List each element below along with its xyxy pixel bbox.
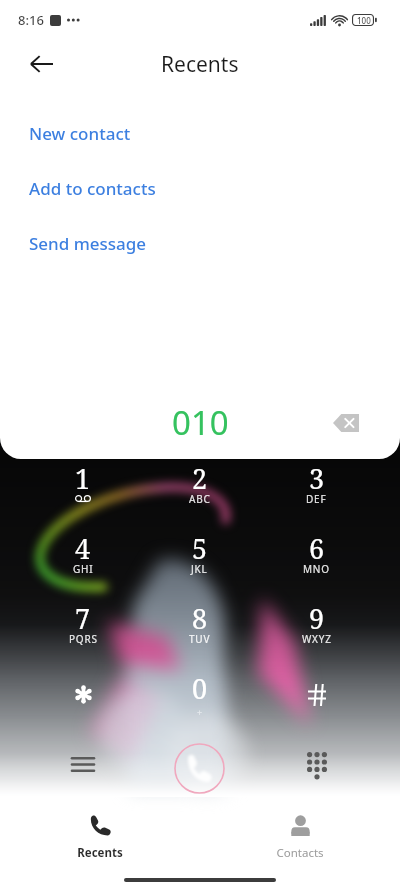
staticText: TUV	[189, 632, 211, 646]
staticText: 100	[357, 15, 371, 26]
staticText: Add to contacts	[29, 177, 156, 200]
staticText: Contacts	[276, 845, 324, 861]
button[interactable]: 2	[141, 451, 258, 521]
staticText: JKL	[191, 562, 208, 576]
staticText: 3	[309, 460, 325, 497]
button[interactable]: Backspace	[326, 403, 366, 443]
button[interactable]: Recents	[0, 811, 200, 867]
staticText: New contact	[29, 122, 131, 145]
button[interactable]: Dialpad	[258, 731, 375, 797]
button[interactable]: 5	[141, 521, 258, 591]
button[interactable]	[258, 661, 375, 731]
button[interactable]: 0	[141, 661, 258, 731]
button[interactable]: 6	[258, 521, 375, 591]
button[interactable]: 9	[258, 591, 375, 661]
button[interactable]: Contacts	[200, 811, 400, 867]
staticText: MNO	[303, 562, 330, 576]
staticText: Recents	[161, 50, 239, 79]
staticText: 1	[75, 460, 91, 497]
staticText: 8:16	[18, 11, 44, 29]
staticText: GHI	[73, 562, 94, 576]
staticText: 6	[309, 530, 325, 567]
staticText: 8	[192, 600, 208, 637]
button[interactable]: 8	[141, 591, 258, 661]
staticText: 5	[192, 530, 208, 567]
staticText: 0	[192, 670, 208, 707]
staticText: 7	[75, 600, 91, 637]
button[interactable]: Back	[18, 41, 64, 87]
button[interactable]: Send message	[0, 216, 400, 271]
staticText: Recents	[77, 845, 123, 861]
button[interactable]: 3	[258, 451, 375, 521]
button[interactable]: Call log menu	[25, 731, 141, 797]
button[interactable]: New contact	[0, 106, 400, 161]
staticText: 2	[192, 460, 208, 497]
button[interactable]	[25, 661, 141, 731]
staticText: ABC	[189, 492, 211, 506]
staticText: 4	[75, 530, 91, 567]
staticText: DEF	[306, 492, 327, 506]
staticText: PQRS	[69, 632, 98, 646]
button[interactable]: Call	[141, 731, 258, 797]
staticText: 9	[309, 600, 325, 637]
staticText: Send message	[29, 232, 147, 255]
button[interactable]: 1	[25, 451, 141, 521]
button[interactable]: Add to contacts	[0, 161, 400, 216]
button[interactable]: 4	[25, 521, 141, 591]
button[interactable]: 7	[25, 591, 141, 661]
staticText: 010	[172, 400, 229, 445]
staticText: WXYZ	[302, 632, 332, 646]
staticText: +	[197, 706, 203, 718]
